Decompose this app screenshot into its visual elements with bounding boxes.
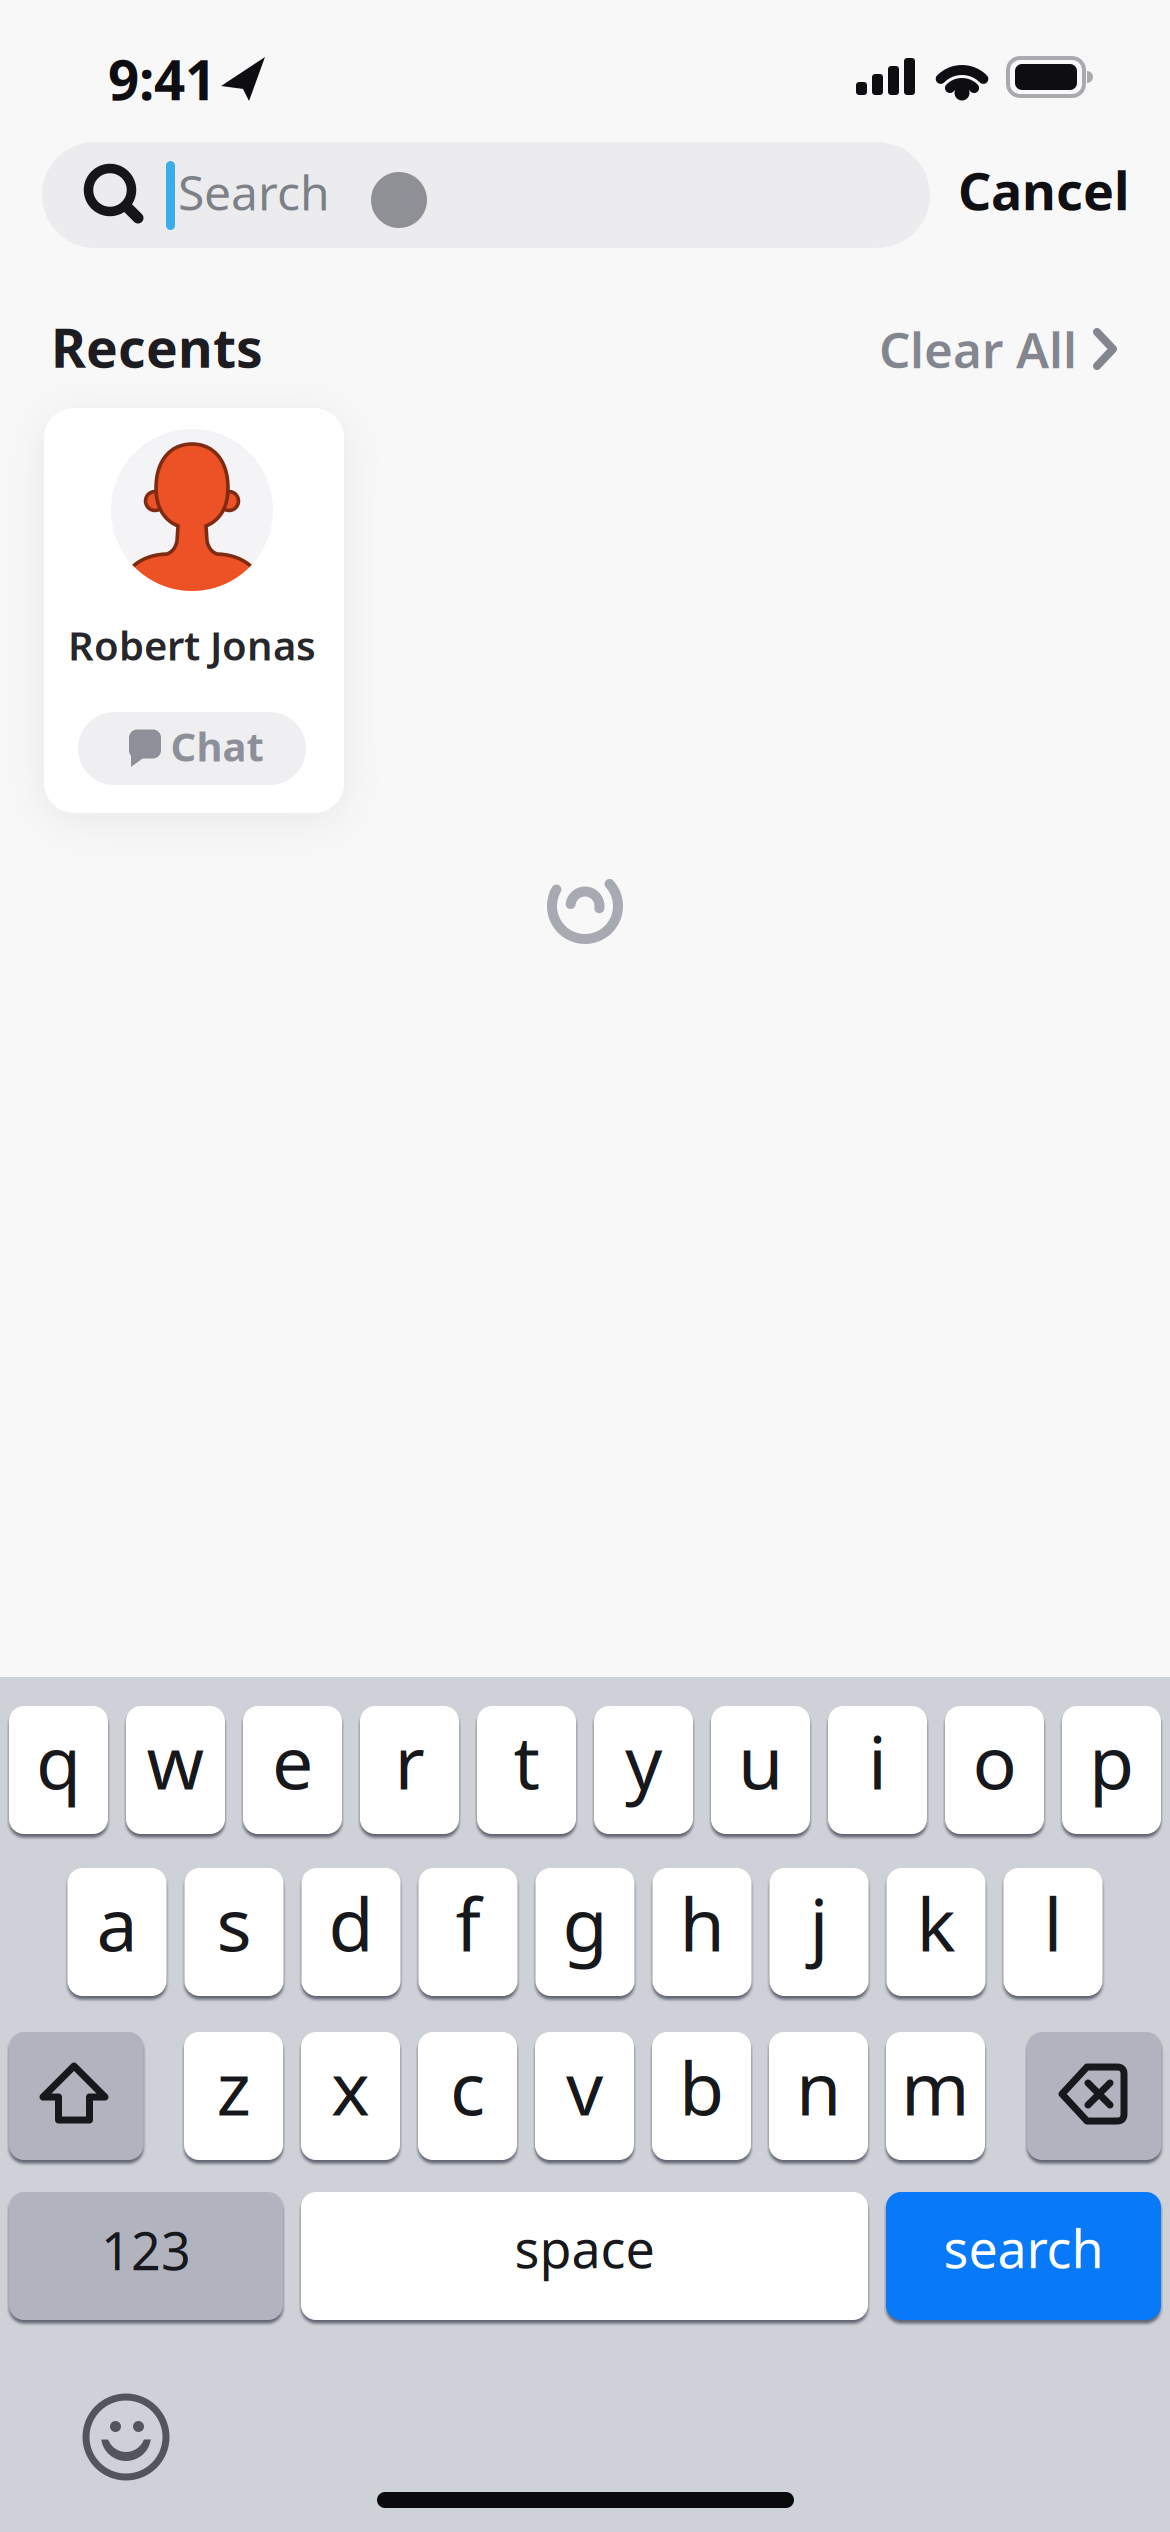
button[interactable]: w xyxy=(126,1706,225,1834)
button[interactable]: 123 xyxy=(9,2192,283,2320)
button[interactable]: k xyxy=(886,1868,985,1996)
button[interactable]: Shift xyxy=(9,2032,143,2160)
button[interactable]: t xyxy=(477,1706,576,1834)
button[interactable]: Delete xyxy=(1027,2032,1161,2160)
button[interactable]: Chat xyxy=(78,712,306,785)
staticText: q xyxy=(36,1712,81,1810)
button[interactable]: a xyxy=(67,1868,166,1996)
staticText: Clear All xyxy=(879,316,1077,382)
button[interactable]: j xyxy=(769,1868,868,1996)
staticText: x xyxy=(331,2038,370,2136)
button[interactable]: r xyxy=(360,1706,459,1834)
staticText: g xyxy=(562,1874,607,1972)
staticText: a xyxy=(96,1874,137,1972)
button[interactable]: search xyxy=(886,2192,1161,2320)
staticText: f xyxy=(455,1874,480,1972)
button[interactable]: i xyxy=(828,1706,927,1834)
staticText: z xyxy=(216,2038,250,2136)
button[interactable]: space xyxy=(301,2192,868,2320)
staticText: n xyxy=(796,2038,841,2136)
button[interactable]: d xyxy=(301,1868,400,1996)
button[interactable]: n xyxy=(769,2032,868,2160)
button[interactable]: l xyxy=(1003,1868,1102,1996)
staticText: m xyxy=(901,2038,970,2136)
button[interactable]: x xyxy=(301,2032,400,2160)
staticText: u xyxy=(738,1712,783,1810)
staticText: i xyxy=(868,1712,887,1810)
staticText: Recents xyxy=(51,312,263,382)
staticText: k xyxy=(916,1874,955,1972)
button[interactable]: y xyxy=(594,1706,693,1834)
staticText: e xyxy=(272,1712,313,1810)
staticText: s xyxy=(216,1874,251,1972)
staticText: Robert Jonas xyxy=(68,618,316,671)
staticText: p xyxy=(1089,1712,1134,1810)
button[interactable]: f xyxy=(418,1868,517,1996)
button[interactable]: p xyxy=(1062,1706,1161,1834)
button[interactable]: c xyxy=(418,2032,517,2160)
staticText: l xyxy=(1043,1874,1062,1972)
button[interactable]: Clear All xyxy=(777,316,1117,382)
staticText: 9:41 xyxy=(108,43,216,115)
button[interactable]: e xyxy=(243,1706,342,1834)
staticText: r xyxy=(394,1712,424,1810)
button[interactable]: v xyxy=(535,2032,634,2160)
staticText: Cancel xyxy=(958,155,1129,225)
button[interactable]: q xyxy=(9,1706,108,1834)
staticText: y xyxy=(625,1712,662,1810)
staticText: d xyxy=(328,1874,373,1972)
staticText: v xyxy=(566,2038,603,2136)
staticText: search xyxy=(943,2213,1103,2283)
button[interactable]: Search xyxy=(0,0,1170,2532)
staticText: j xyxy=(809,1874,828,1972)
staticText: Search xyxy=(178,160,330,224)
button[interactable]: Robert Jonas xyxy=(0,0,1170,2532)
button[interactable]: Cancel xyxy=(829,155,1129,225)
staticText: w xyxy=(146,1712,204,1810)
button[interactable]: b xyxy=(652,2032,751,2160)
button[interactable]: z xyxy=(184,2032,283,2160)
staticText: t xyxy=(513,1712,539,1810)
staticText: 123 xyxy=(101,2215,191,2285)
button[interactable]: h xyxy=(652,1868,751,1996)
button[interactable]: m xyxy=(886,2032,985,2160)
button[interactable]: Emoji xyxy=(85,2396,167,2478)
staticText: o xyxy=(972,1712,1016,1810)
staticText: space xyxy=(514,2213,654,2283)
button[interactable]: g xyxy=(535,1868,634,1996)
staticText: Chat xyxy=(170,719,263,772)
staticText: h xyxy=(679,1874,724,1972)
button[interactable]: u xyxy=(711,1706,810,1834)
staticText: c xyxy=(450,2038,485,2136)
button[interactable]: o xyxy=(945,1706,1044,1834)
staticText: b xyxy=(679,2038,724,2136)
button[interactable]: s xyxy=(184,1868,283,1996)
